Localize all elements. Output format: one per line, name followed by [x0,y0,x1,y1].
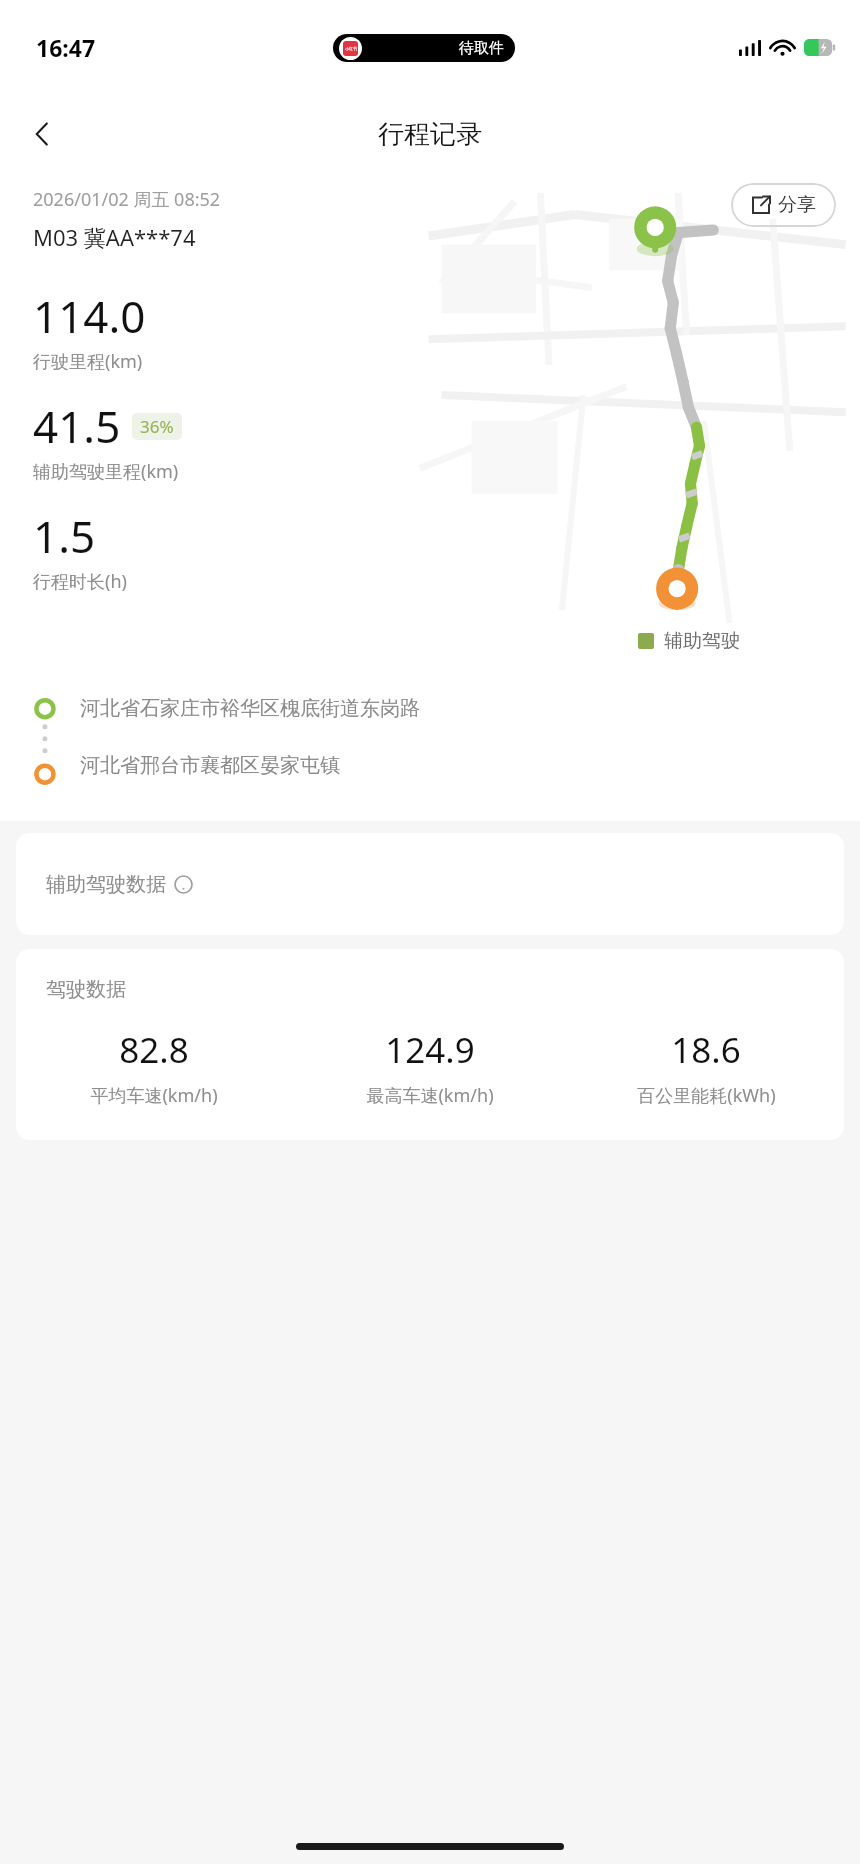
staticText: 辅助驾驶 [664,629,740,653]
staticText: 辅助驾驶里程(km) [33,459,179,484]
staticText: 小红书 [345,46,357,51]
staticText: 辅助驾驶数据 [46,872,166,897]
staticText: 114.0 [33,286,146,346]
staticText: 待取件 [459,39,504,58]
staticText: 2026/01/02 周五 08:52 [33,187,221,212]
staticText: 平均车速(km/h) [90,1083,218,1108]
staticText: 最高车速(km/h) [366,1083,494,1108]
staticText: 124.9 [385,1026,475,1074]
staticText: 百公里能耗(kWh) [637,1083,776,1108]
button[interactable]: 分享 [731,183,836,227]
staticText: M03 冀AA***74 [33,222,196,252]
staticText: 河北省邢台市襄都区晏家屯镇 [80,753,340,778]
staticText: 82.8 [119,1026,189,1074]
button[interactable]: Back [16,108,68,160]
staticText: 行程记录 [378,118,482,151]
staticText: 分享 [778,193,816,217]
staticText: 河北省石家庄市裕华区槐底街道东岗路 [80,696,420,721]
button[interactable]: 驾驶数据 [16,949,844,1140]
staticText: 36% [140,415,174,438]
staticText: 行驶里程(km) [33,349,143,374]
staticText: 行程时长(h) [33,569,127,594]
staticText: 41.5 [33,396,121,456]
staticText: 1.5 [33,506,96,566]
button[interactable]: 辅助驾驶数据 [16,833,844,935]
staticText: 16:47 [36,32,96,63]
staticText: 18.6 [671,1026,741,1074]
staticText: 驾驶数据 [46,977,126,1002]
